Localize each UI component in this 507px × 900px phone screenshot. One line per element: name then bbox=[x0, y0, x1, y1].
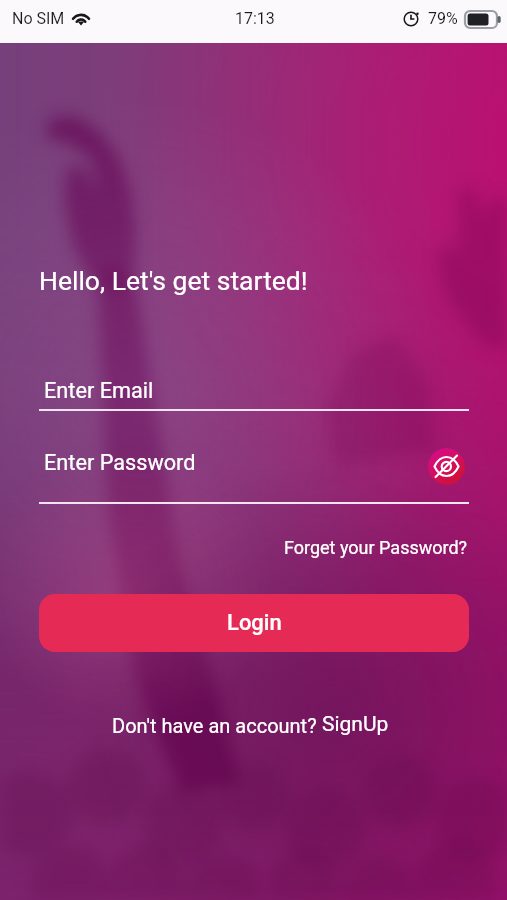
staticText: SignUp bbox=[322, 712, 389, 737]
staticText: No SIM bbox=[12, 9, 65, 28]
staticText: Enter Password bbox=[44, 450, 196, 475]
staticText: 17:13 bbox=[235, 9, 275, 28]
staticText: Enter Email bbox=[44, 378, 154, 403]
button[interactable]: Show password bbox=[428, 448, 465, 485]
staticText: Don't have an account? bbox=[112, 714, 322, 737]
staticText: Login bbox=[227, 610, 282, 636]
button[interactable]: Enter Email bbox=[39, 372, 469, 411]
staticText: Hello, Let's get started! bbox=[39, 265, 308, 296]
button[interactable]: Forget your Password? bbox=[278, 534, 474, 561]
button[interactable]: SignUp bbox=[322, 712, 389, 737]
staticText: 79% bbox=[428, 9, 458, 28]
staticText: Forget your Password? bbox=[284, 537, 468, 558]
button[interactable]: Login bbox=[39, 594, 469, 652]
button[interactable]: Enter Password bbox=[39, 444, 469, 504]
